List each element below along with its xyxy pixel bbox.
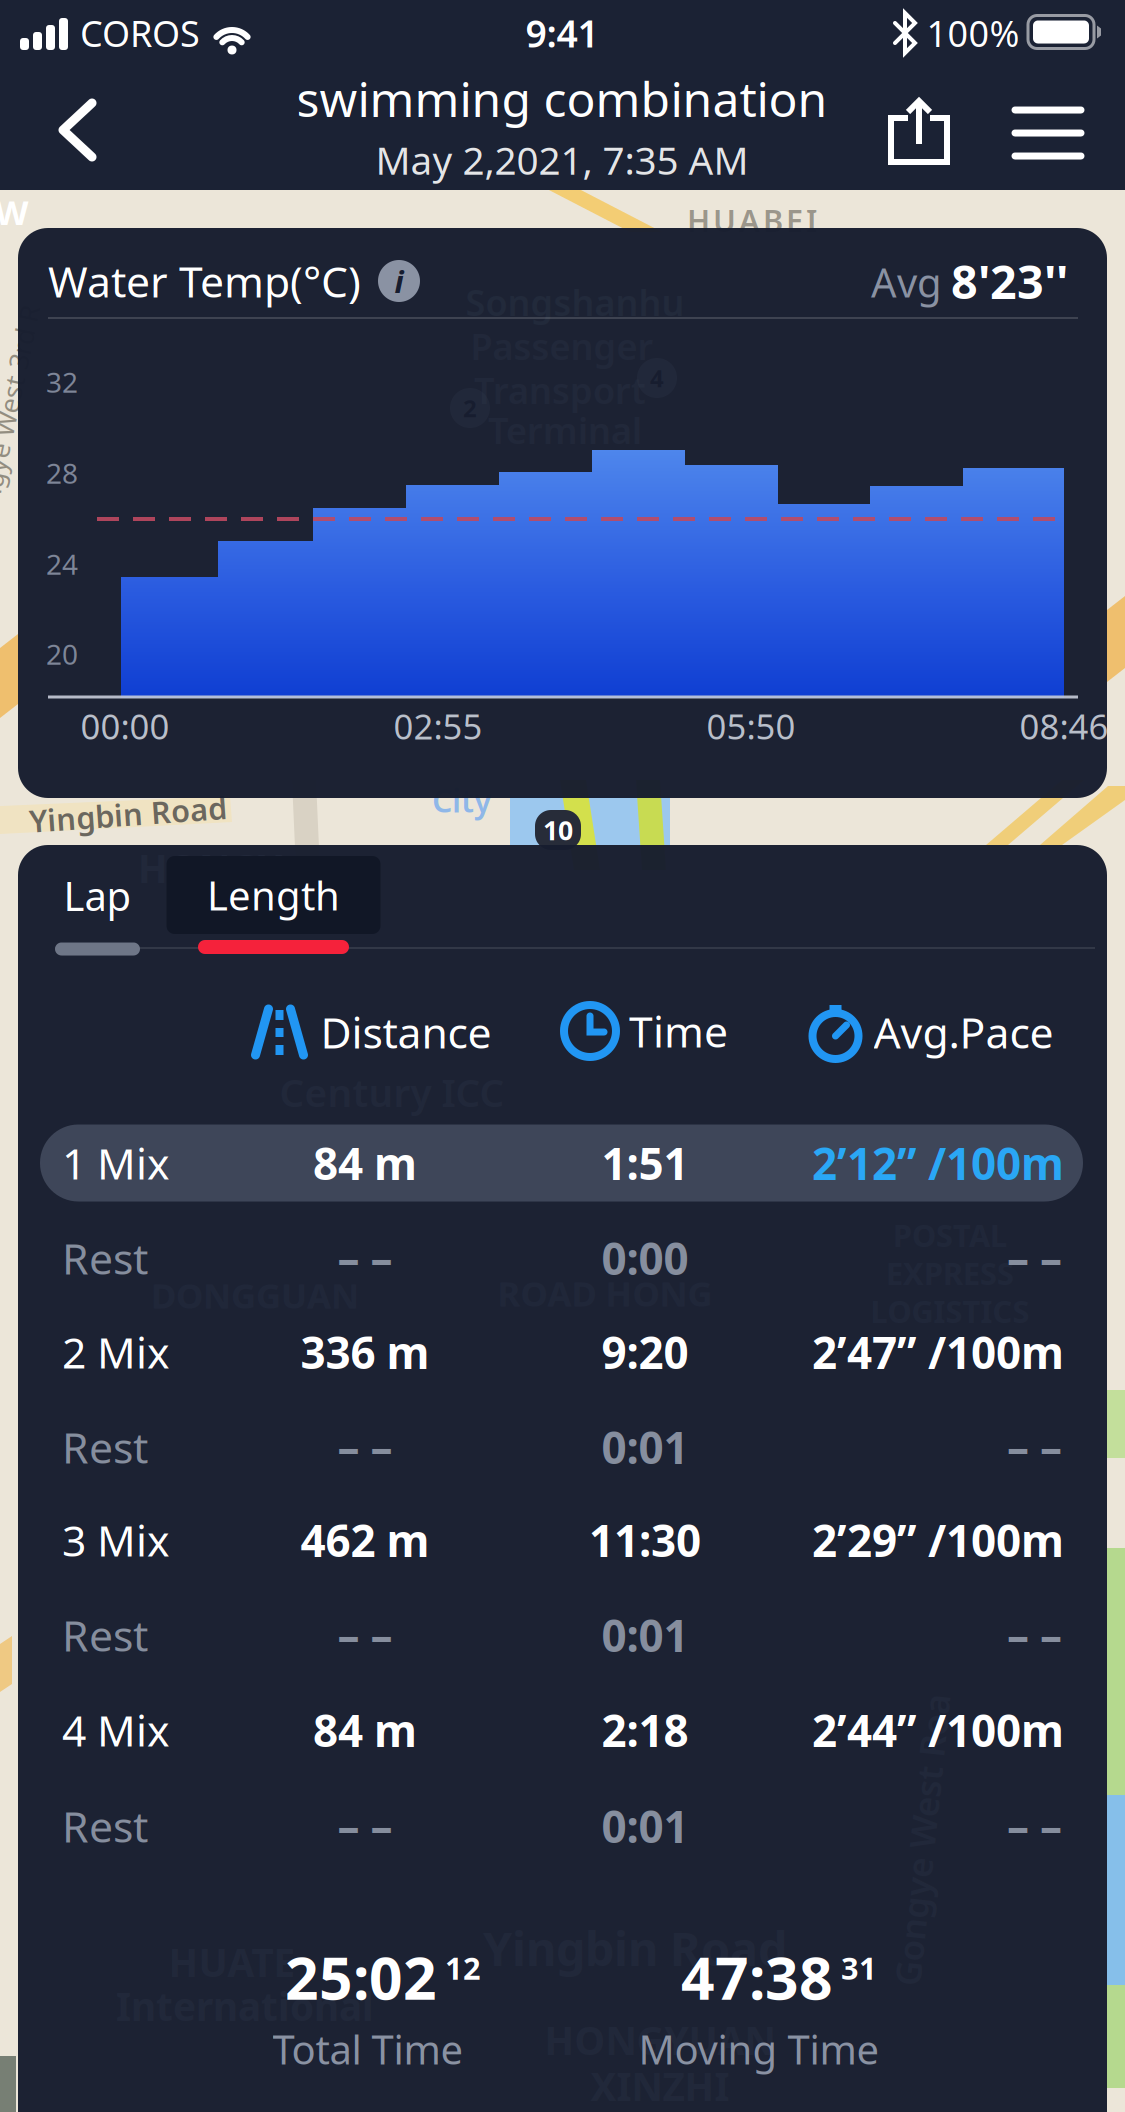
- button[interactable]: Rest: [18, 1399, 1107, 1494]
- staticText: – –: [337, 1797, 392, 1855]
- button[interactable]: Lap: [55, 856, 140, 955]
- staticText: 4 Mix: [62, 1702, 170, 1758]
- staticText: 2 Mix: [62, 1324, 170, 1380]
- staticText: Total Time: [272, 2022, 463, 2075]
- staticText: 100%: [926, 9, 1019, 57]
- staticText: HUABEI: [687, 200, 817, 240]
- button[interactable]: Back: [39, 83, 117, 179]
- staticText: 47:38 31: [681, 1938, 877, 2016]
- button[interactable]: Menu: [999, 94, 1096, 171]
- staticText: International: [116, 1980, 374, 2032]
- staticText: 9:20: [601, 1323, 688, 1381]
- staticText: Avg.Pace: [873, 1004, 1053, 1060]
- button[interactable]: 2 Mix: [18, 1304, 1107, 1399]
- staticText: Terminal: [488, 406, 642, 454]
- staticText: Rest: [62, 1607, 148, 1663]
- staticText: – –: [1007, 1797, 1062, 1855]
- staticText: Avg: [871, 255, 942, 308]
- staticText: Time: [629, 1003, 728, 1059]
- staticText: HUATE: [168, 1936, 295, 1988]
- staticText: 20: [46, 635, 78, 673]
- staticText: 84 m: [313, 1701, 417, 1759]
- button[interactable]: 4 Mix: [18, 1682, 1107, 1777]
- staticText: 28: [46, 454, 78, 492]
- button[interactable]: Rest: [18, 1587, 1107, 1682]
- staticText: 24: [46, 545, 78, 583]
- staticText: swimming combination: [296, 66, 827, 130]
- staticText: 25:02 12: [285, 1938, 481, 2016]
- staticText: 05:50: [706, 703, 795, 749]
- staticText: Songshanhu: [465, 278, 684, 326]
- staticText: 32: [46, 363, 78, 401]
- button[interactable]: Info: [378, 260, 420, 302]
- button[interactable]: 1 Mix: [18, 1115, 1107, 1210]
- staticText: 3 Mix: [62, 1512, 170, 1568]
- staticText: 4: [650, 362, 664, 394]
- staticText: Lap: [63, 869, 131, 922]
- staticText: 2’44” /100m: [812, 1701, 1064, 1759]
- button[interactable]: 3 Mix: [18, 1492, 1107, 1587]
- staticText: Yingbin Road: [29, 794, 227, 834]
- staticText: i: [394, 261, 403, 301]
- staticText: 0:00: [601, 1229, 688, 1287]
- staticText: 84 m: [313, 1134, 417, 1192]
- staticText: 08:46: [1019, 703, 1108, 749]
- staticText: Gongye West Roa: [775, 1817, 1068, 1863]
- staticText: 9:41: [525, 8, 598, 58]
- staticText: – –: [1007, 1418, 1062, 1476]
- staticText: 0:01: [601, 1418, 688, 1476]
- staticText: – –: [337, 1229, 392, 1287]
- button[interactable]: Rest: [18, 1210, 1107, 1305]
- staticText: Rest: [62, 1230, 148, 1286]
- staticText: Moving Time: [638, 2022, 879, 2075]
- staticText: 11:30: [589, 1511, 701, 1569]
- staticText: 2’12” /100m: [812, 1134, 1064, 1192]
- staticText: EXPRESS: [886, 1253, 1014, 1293]
- staticText: 462 m: [300, 1511, 429, 1569]
- staticText: May 2,2021, 7:35 AM: [375, 134, 748, 185]
- button[interactable]: Share: [876, 86, 962, 176]
- staticText: Rest: [62, 1419, 148, 1475]
- staticText: 10: [543, 812, 573, 848]
- button[interactable]: Rest: [18, 1778, 1107, 1873]
- staticText: XINZHI: [590, 2060, 729, 2112]
- staticText: HONGY: [138, 842, 282, 894]
- staticText: Yingbin Road: [483, 1917, 787, 1979]
- staticText: 1 Mix: [62, 1135, 170, 1191]
- staticText: – –: [337, 1418, 392, 1476]
- staticText: Transport: [474, 366, 646, 414]
- staticText: Length: [207, 868, 340, 921]
- staticText: – –: [1007, 1606, 1062, 1664]
- staticText: 2’47” /100m: [812, 1323, 1064, 1381]
- staticText: Congye West 3rd R: [0, 402, 123, 438]
- staticText: Water Temp(°C): [48, 253, 361, 309]
- staticText: Rest: [62, 1798, 148, 1854]
- staticText: – –: [337, 1606, 392, 1664]
- staticText: 0:01: [601, 1797, 688, 1855]
- staticText: City: [432, 779, 492, 821]
- staticText: 2’29” /100m: [812, 1511, 1064, 1569]
- staticText: – –: [1007, 1229, 1062, 1287]
- staticText: 02:55: [393, 703, 482, 749]
- staticText: COROS: [80, 9, 200, 57]
- staticText: 2: [463, 392, 477, 424]
- staticText: Distance: [320, 1004, 491, 1060]
- staticText: 8'23'': [951, 250, 1068, 312]
- staticText: 336 m: [300, 1323, 429, 1381]
- staticText: 0:01: [601, 1606, 688, 1664]
- staticText: ROAD HONG: [497, 1270, 712, 1316]
- staticText: 2:18: [601, 1701, 688, 1759]
- staticText: HONGYUAN: [544, 2014, 775, 2066]
- staticText: 1:51: [601, 1134, 688, 1192]
- button[interactable]: Length: [166, 856, 380, 954]
- staticText: W: [0, 189, 29, 235]
- staticText: 00:00: [80, 703, 169, 749]
